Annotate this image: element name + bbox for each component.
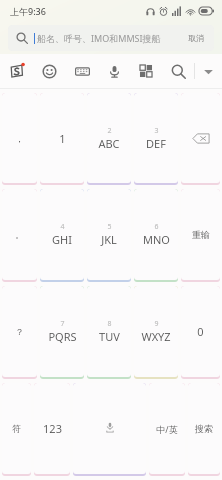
button[interactable]: 0: [181, 286, 220, 377]
button[interactable]: 2: [87, 93, 131, 183]
staticText: 9: [154, 319, 159, 329]
staticText: 8: [107, 319, 112, 329]
button[interactable]: 123: [34, 383, 70, 474]
staticText: 重输: [192, 229, 210, 240]
staticText: 取消: [188, 33, 204, 43]
button[interactable]: 重输: [181, 189, 220, 280]
staticText: 。: [15, 229, 24, 240]
staticText: 船名、呼号、IMO和MMSI搜船: [37, 32, 161, 44]
button[interactable]: Keyboard layout: [66, 54, 98, 88]
button[interactable]: 9: [134, 286, 178, 377]
staticText: DEF: [146, 136, 166, 151]
button[interactable]: 5: [87, 189, 131, 280]
button[interactable]: Scan: [130, 54, 162, 88]
button[interactable]: 8: [87, 286, 131, 377]
button[interactable]: Emoji: [33, 54, 66, 88]
staticText: 0: [197, 324, 204, 339]
staticText: JKL: [101, 232, 117, 247]
button[interactable]: Hide keyboard: [195, 54, 222, 88]
staticText: ABC: [98, 136, 120, 151]
button[interactable]: 1: [40, 93, 84, 183]
staticText: 符: [12, 423, 21, 434]
staticText: 搜索: [195, 423, 213, 434]
staticText: PQRS: [48, 329, 77, 344]
staticText: 123: [43, 421, 62, 436]
button[interactable]: 中/英: [149, 383, 185, 474]
staticText: GHI: [52, 232, 72, 247]
staticText: 2: [107, 126, 112, 136]
button[interactable]: Space: [73, 383, 146, 474]
staticText: 6: [154, 222, 159, 232]
button[interactable]: Sogou input: [0, 54, 33, 88]
button[interactable]: 搜索: [188, 383, 220, 474]
button[interactable]: 符: [2, 383, 31, 474]
button[interactable]: ？: [2, 286, 37, 377]
staticText: WXYZ: [141, 329, 171, 344]
staticText: 5: [107, 222, 112, 232]
button[interactable]: Search: [8, 25, 214, 51]
button[interactable]: Voice input: [98, 54, 130, 88]
button[interactable]: Backspace: [181, 93, 220, 183]
staticText: ？: [15, 326, 24, 337]
button[interactable]: ，: [2, 93, 37, 183]
button[interactable]: Search: [162, 54, 194, 88]
staticText: 上午9:36: [10, 5, 46, 17]
other: Search: [16, 32, 28, 44]
staticText: TUV: [99, 329, 120, 344]
staticText: 4: [60, 222, 65, 232]
staticText: 3: [154, 126, 159, 136]
button[interactable]: 4: [40, 189, 84, 280]
button[interactable]: 7: [40, 286, 84, 377]
staticText: 1: [59, 131, 66, 146]
staticText: 中/英: [156, 423, 178, 435]
staticText: MNO: [143, 232, 170, 247]
button[interactable]: 取消: [186, 31, 206, 45]
staticText: 7: [60, 319, 65, 329]
button[interactable]: 3: [134, 93, 178, 183]
staticText: ，: [15, 133, 24, 144]
button[interactable]: 6: [134, 189, 178, 280]
